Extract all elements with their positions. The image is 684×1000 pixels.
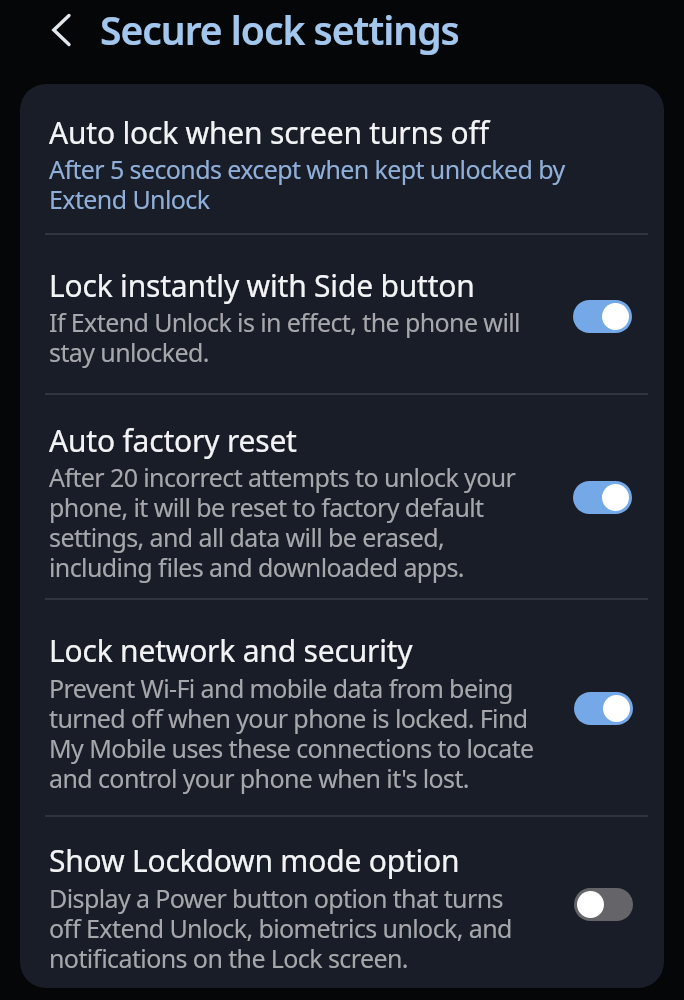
staticText: Prevent Wi-Fi and mobile data from being…	[49, 671, 534, 795]
button[interactable]	[20, 600, 664, 816]
button[interactable]	[573, 481, 632, 514]
staticText: Show Lockdown mode option	[49, 840, 460, 881]
button[interactable]	[20, 394, 664, 598]
button[interactable]	[20, 817, 664, 988]
button[interactable]	[20, 84, 664, 233]
button[interactable]	[20, 235, 664, 393]
staticText: Lock instantly with Side button	[49, 265, 475, 306]
staticText: After 5 seconds except when kept unlocke…	[49, 152, 565, 216]
staticText: Secure lock settings	[100, 3, 459, 56]
staticText: Display a Power button option that turns…	[49, 881, 512, 975]
button[interactable]	[574, 888, 633, 921]
staticText: After 20 incorrect attempts to unlock yo…	[49, 460, 516, 584]
staticText: Auto lock when screen turns off	[49, 112, 489, 153]
staticText: If Extend Unlock is in effect, the phone…	[49, 305, 520, 369]
staticText: Lock network and security	[49, 630, 413, 671]
staticText: Auto factory reset	[49, 420, 297, 461]
button[interactable]	[573, 300, 632, 333]
button[interactable]	[574, 692, 633, 725]
button[interactable]	[39, 8, 83, 52]
